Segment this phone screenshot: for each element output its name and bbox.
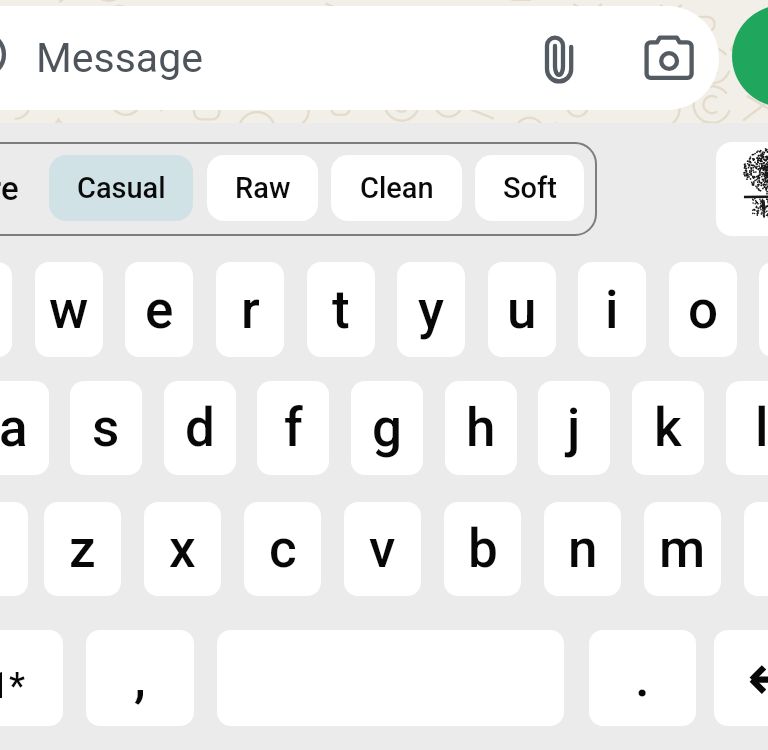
- staticText: v: [369, 518, 396, 580]
- staticText: w: [49, 279, 89, 341]
- button[interactable]: j: [538, 381, 610, 475]
- button[interactable]: Casual: [49, 155, 193, 221]
- button[interactable]: v: [344, 502, 421, 596]
- staticText: i: [605, 279, 619, 341]
- staticText: u: [507, 279, 537, 341]
- staticText: n: [568, 518, 598, 580]
- staticText: y: [418, 279, 444, 341]
- staticText: j: [567, 397, 581, 459]
- button[interactable]: Camera: [644, 34, 694, 84]
- button[interactable]: u: [488, 262, 556, 357]
- staticText: f: [284, 397, 303, 459]
- button[interactable]: .: [589, 630, 696, 726]
- staticText: e: [145, 279, 174, 341]
- staticText: Clean: [360, 171, 434, 205]
- button[interactable]: Attach: [540, 32, 598, 90]
- button[interactable]: l: [726, 381, 768, 475]
- button[interactable]: Raw: [207, 155, 318, 221]
- staticText: Message: [36, 34, 203, 82]
- button[interactable]: k: [632, 381, 704, 475]
- staticText: .: [635, 647, 650, 709]
- button[interactable]: Sticker: [716, 142, 768, 236]
- staticText: ,: [134, 647, 146, 709]
- staticText: o: [688, 279, 719, 341]
- button[interactable]: r: [216, 262, 284, 357]
- staticText: d: [185, 397, 215, 459]
- button[interactable]: [714, 630, 768, 726]
- button[interactable]: Send: [732, 5, 768, 107]
- button[interactable]: t: [307, 262, 375, 357]
- button[interactable]: a: [0, 381, 49, 475]
- button[interactable]: ,: [86, 630, 194, 726]
- button[interactable]: i: [578, 262, 646, 357]
- staticText: t: [332, 279, 350, 341]
- button[interactable]: d: [164, 381, 236, 475]
- button[interactable]: [744, 502, 768, 596]
- button[interactable]: Soft: [475, 155, 584, 221]
- staticText: z: [69, 518, 96, 580]
- staticText: Raw: [235, 171, 291, 205]
- staticText: c: [269, 518, 297, 580]
- staticText: k: [654, 397, 682, 459]
- button[interactable]: m: [644, 502, 721, 596]
- staticText: r: [241, 279, 260, 341]
- button[interactable]: h: [445, 381, 517, 475]
- staticText: Casual: [77, 171, 166, 205]
- staticText: s: [92, 397, 120, 459]
- button[interactable]: w: [35, 262, 103, 357]
- button[interactable]: e: [125, 262, 193, 357]
- button[interactable]: g: [351, 381, 423, 475]
- button[interactable]: Clean: [331, 155, 462, 221]
- button[interactable]: x: [144, 502, 221, 596]
- staticText: l: [755, 397, 768, 459]
- button[interactable]: Emoji: [0, 31, 6, 78]
- staticText: g: [372, 397, 403, 459]
- button[interactable]: o: [669, 262, 737, 357]
- staticText: m: [659, 518, 706, 580]
- staticText: ?1*: [0, 665, 25, 707]
- staticText: b: [468, 518, 498, 580]
- button[interactable]: n: [544, 502, 621, 596]
- button[interactable]: [0, 6, 719, 110]
- button[interactable]: ?1*: [0, 630, 63, 726]
- button[interactable]: s: [70, 381, 142, 475]
- button[interactable]: q: [0, 262, 12, 357]
- button[interactable]: f: [257, 381, 329, 475]
- button[interactable]: c: [244, 502, 321, 596]
- staticText: h: [466, 397, 496, 459]
- staticText: a: [0, 397, 28, 459]
- staticText: x: [169, 518, 196, 580]
- button[interactable]: p: [759, 262, 768, 357]
- staticText: Soft: [503, 171, 557, 205]
- button[interactable]: More: [0, 155, 31, 221]
- button[interactable]: [0, 502, 28, 596]
- button[interactable]: b: [444, 502, 521, 596]
- staticText: More: [0, 169, 19, 208]
- button[interactable]: y: [397, 262, 465, 357]
- button[interactable]: z: [44, 502, 121, 596]
